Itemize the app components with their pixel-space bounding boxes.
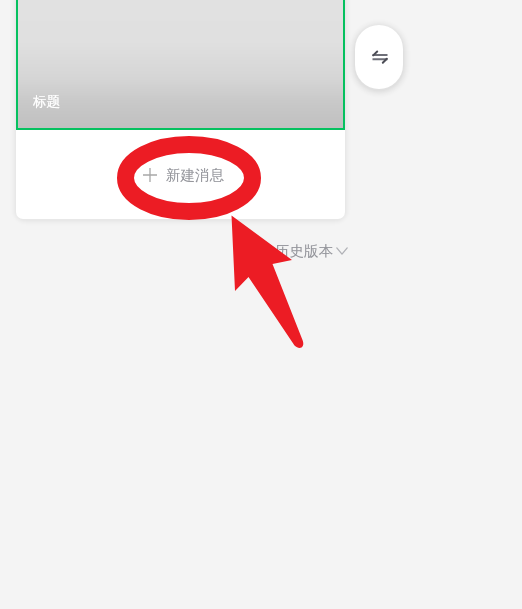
- staticText: 新建消息: [166, 166, 224, 184]
- staticText: 标题: [33, 93, 60, 110]
- staticText: 历史版本: [275, 242, 333, 260]
- button[interactable]: 历史版本: [275, 242, 348, 260]
- button[interactable]: Switch / swap: [355, 25, 403, 89]
- button[interactable]: 新建消息: [16, 130, 345, 219]
